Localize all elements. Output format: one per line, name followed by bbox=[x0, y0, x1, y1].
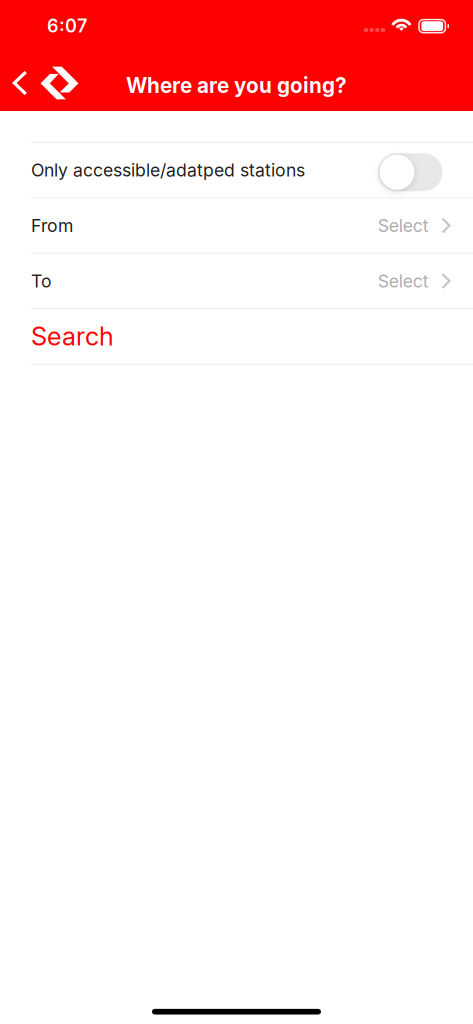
staticText: Search bbox=[31, 321, 114, 352]
staticText: 6:07 bbox=[47, 15, 87, 37]
button[interactable]: Home bbox=[35, 61, 83, 105]
staticText: Select bbox=[378, 215, 429, 236]
button[interactable]: Search bbox=[0, 309, 473, 364]
button[interactable]: Only accessible/adatped stations bbox=[0, 143, 473, 197]
staticText: Where are you going? bbox=[126, 73, 347, 98]
staticText: From bbox=[31, 215, 73, 236]
button[interactable]: From bbox=[0, 198, 473, 253]
button[interactable]: Back bbox=[2, 61, 36, 105]
staticText: Only accessible/adatped stations bbox=[31, 160, 305, 181]
staticText: To bbox=[31, 270, 52, 292]
staticText: Select bbox=[378, 270, 429, 292]
button[interactable]: To bbox=[0, 254, 473, 308]
